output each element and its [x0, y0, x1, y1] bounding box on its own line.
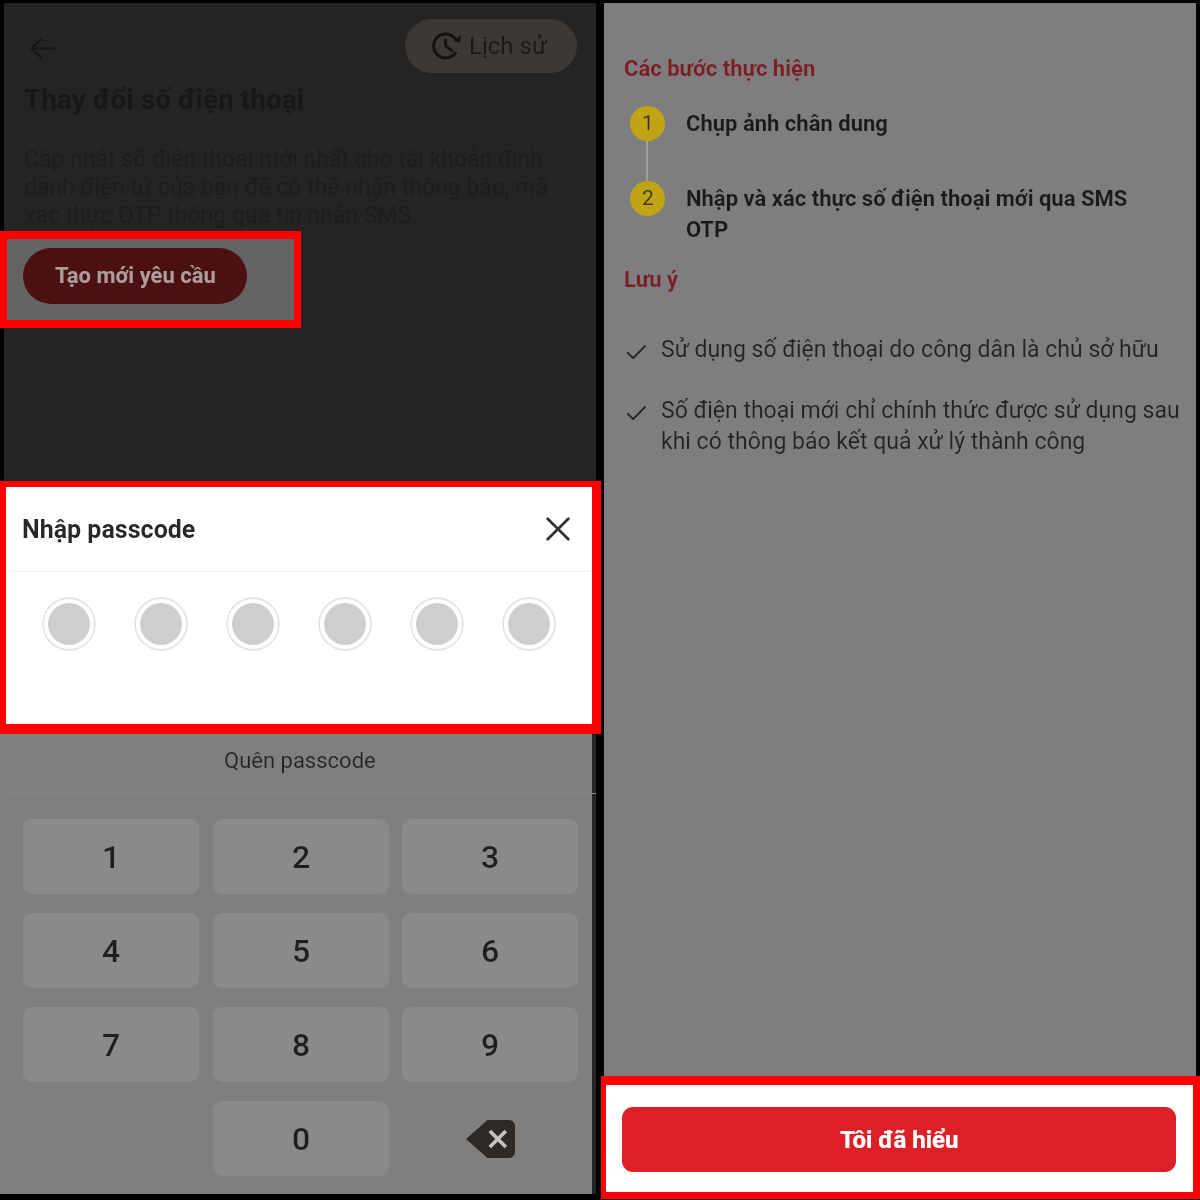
- staticText: Chụp ảnh chân dung: [686, 111, 888, 137]
- staticText: 1: [102, 838, 121, 876]
- staticText: 6: [481, 932, 500, 970]
- staticText: 9: [481, 1026, 500, 1064]
- button[interactable]: 7: [23, 1007, 199, 1082]
- button[interactable]: 6: [402, 913, 578, 988]
- button[interactable]: Close: [536, 507, 580, 551]
- staticText: 4: [102, 932, 121, 970]
- staticText: 0: [292, 1120, 311, 1158]
- staticText: 8: [292, 1026, 311, 1064]
- staticText: 5: [292, 932, 311, 970]
- staticText: 7: [102, 1026, 121, 1064]
- staticText: Số điện thoại mới chỉ chính thức được sử…: [661, 397, 1186, 454]
- button[interactable]: Back: [22, 27, 64, 69]
- staticText: Tôi đã hiểu: [840, 1126, 959, 1154]
- button[interactable]: 9: [402, 1007, 578, 1082]
- staticText: 2: [292, 838, 311, 876]
- button[interactable]: 5: [213, 913, 389, 988]
- staticText: 2: [642, 186, 654, 211]
- staticText: 1: [642, 111, 654, 136]
- staticText: Các bước thực hiện: [624, 56, 816, 82]
- button[interactable]: 8: [213, 1007, 389, 1082]
- button[interactable]: 2: [213, 819, 389, 894]
- staticText: 3: [481, 838, 500, 876]
- button[interactable]: Lịch sử: [405, 19, 577, 73]
- button[interactable]: Tôi đã hiểu: [622, 1107, 1176, 1172]
- button[interactable]: Delete: [402, 1101, 578, 1176]
- button[interactable]: 4: [23, 913, 199, 988]
- button[interactable]: 3: [402, 819, 578, 894]
- staticText: Thay đổi số điện thoại: [24, 83, 305, 116]
- staticText: Nhập passcode: [22, 515, 196, 544]
- staticText: Quên passcode: [224, 748, 376, 774]
- button[interactable]: 0: [213, 1101, 389, 1176]
- staticText: Lịch sử: [469, 32, 547, 60]
- staticText: Sử dụng số điện thoại do công dân là chủ…: [661, 336, 1186, 363]
- button[interactable]: 1: [23, 819, 199, 894]
- staticText: Lưu ý: [624, 267, 679, 293]
- button[interactable]: Tạo mới yêu cầu: [23, 248, 247, 304]
- staticText: Nhập và xác thực số điện thoại mới qua S…: [686, 186, 1156, 242]
- staticText: Tạo mới yêu cầu: [55, 263, 216, 289]
